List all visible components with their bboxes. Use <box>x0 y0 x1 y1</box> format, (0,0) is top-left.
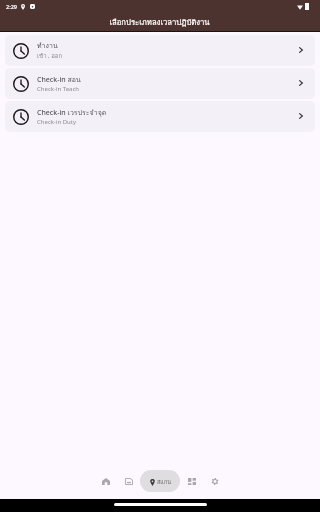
button[interactable]: Check-in เวรประจำจุด <box>5 101 315 132</box>
staticText: 2:29 <box>6 3 17 10</box>
button[interactable]: ทำงาน <box>5 35 315 66</box>
button[interactable]: สแกน <box>140 470 180 492</box>
staticText: สแกน <box>157 478 171 487</box>
button[interactable]: Settings <box>203 470 226 492</box>
button[interactable]: Documents <box>117 470 140 492</box>
staticText: เข้า , ออก <box>37 51 63 61</box>
staticText: Check-in Teach <box>37 85 79 93</box>
button[interactable]: Home <box>94 470 117 492</box>
staticText: Check-in Duty <box>37 118 77 126</box>
staticText: Check-in สอน <box>37 74 81 85</box>
button[interactable]: Scan QR <box>180 470 203 492</box>
button[interactable]: Check-in สอน <box>5 68 315 99</box>
staticText: เลือกประเภทลงเวลาปฏิบัติงาน <box>109 16 210 28</box>
staticText: ทำงาน <box>37 40 58 51</box>
staticText: Check-in เวรประจำจุด <box>37 107 107 118</box>
